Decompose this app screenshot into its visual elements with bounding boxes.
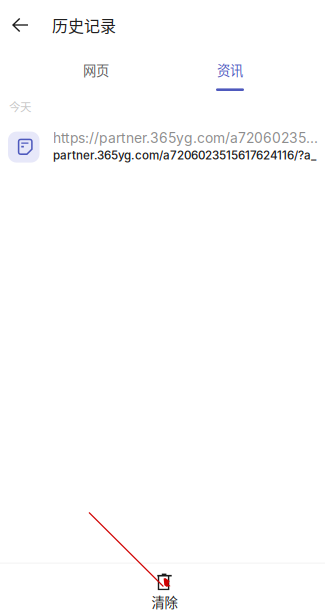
staticText: https://partner.365yg.com/a7206023515…	[53, 130, 323, 146]
button[interactable]: 清除	[0, 564, 325, 613]
staticText: 网页	[83, 60, 109, 79]
staticText: 历史记录	[52, 13, 116, 37]
button[interactable]: 网页	[29, 50, 163, 91]
staticText: 今天	[9, 98, 31, 115]
button[interactable]: 资讯	[163, 50, 297, 91]
button[interactable]: https://partner.365yg.com/a7206023515…	[0, 115, 325, 163]
staticText: 资讯	[217, 60, 243, 79]
staticText: partner.365yg.com/a7206023515617624116/?…	[53, 148, 316, 162]
staticText: 清除	[151, 592, 177, 611]
button[interactable]: Back	[0, 0, 41, 50]
